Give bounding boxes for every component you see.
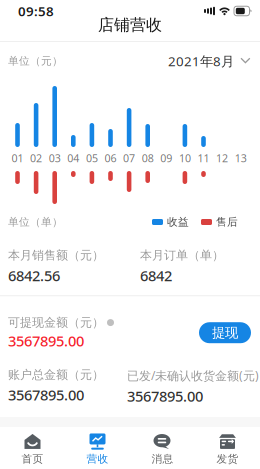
staticText: 03 [49, 151, 61, 165]
staticText: 02 [30, 151, 42, 165]
staticText: 09:58 [18, 2, 54, 20]
staticText: 店铺营收 [98, 15, 162, 35]
button[interactable]: 消息 [130, 430, 195, 465]
button[interactable]: 提现 [199, 322, 251, 343]
staticText: 首页 [21, 452, 43, 465]
staticText: 单位（单） [8, 215, 63, 228]
staticText: 营收 [86, 452, 108, 465]
staticText: 04 [67, 151, 79, 165]
staticText: 08 [142, 151, 154, 165]
staticText: 06 [104, 151, 116, 165]
staticText: 6842.56 [8, 266, 60, 285]
button[interactable]: 发货 [195, 430, 260, 465]
button[interactable]: 营收 [65, 430, 130, 465]
staticText: 6842 [140, 266, 172, 285]
staticText: 11 [197, 151, 209, 165]
staticText: 13 [235, 151, 247, 165]
button[interactable]: 说明 [107, 319, 114, 326]
staticText: 本月订单（单） [140, 248, 224, 263]
staticText: 发货 [216, 452, 238, 465]
staticText: 可提现金额（元） [8, 315, 104, 330]
staticText: 01 [11, 151, 23, 165]
staticText: 账户总金额（元） [8, 367, 104, 382]
staticText: 提现 [212, 324, 238, 341]
button[interactable]: 首页 [0, 430, 65, 465]
staticText: 12 [216, 151, 228, 165]
staticText: 10 [179, 151, 191, 165]
staticText: 单位（元） [8, 54, 63, 67]
staticText: 售后 [216, 215, 238, 228]
staticText: 3567895.00 [8, 385, 84, 405]
staticText: 09 [160, 151, 172, 165]
staticText: 本月销售额（元） [8, 248, 104, 263]
staticText: 已发/未确认收货金额(元) [127, 367, 259, 383]
staticText: 2021年8月 [168, 52, 234, 70]
staticText: 07 [123, 151, 135, 165]
staticText: 05 [86, 151, 98, 165]
button[interactable]: 2021年8月 [168, 52, 250, 70]
staticText: 收益 [167, 215, 189, 228]
staticText: 3567895.00 [127, 386, 203, 406]
staticText: 消息 [151, 452, 173, 465]
staticText: 3567895.00 [8, 331, 84, 350]
